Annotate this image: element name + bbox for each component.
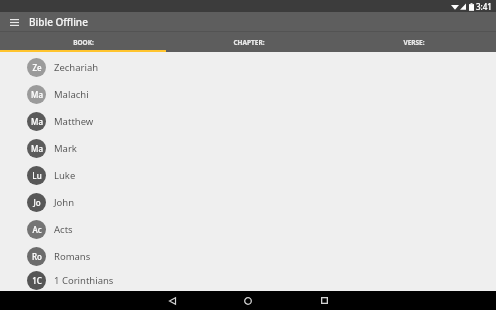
button[interactable]: Lu [0,162,496,189]
button[interactable]: Back [154,291,190,310]
button[interactable]: 1C [0,270,496,291]
staticText: CHAPTER: [233,38,265,47]
button[interactable]: VERSE: [331,32,496,52]
staticText: Luke [54,169,76,182]
button[interactable]: Jo [0,189,496,216]
staticText: Ma [31,116,43,127]
staticText: Lu [32,170,42,181]
staticText: Ze [32,62,42,73]
button[interactable]: CHAPTER: [166,32,331,52]
staticText: Ro [32,251,42,262]
button[interactable]: Home [230,291,266,310]
button[interactable]: Ma [0,108,496,135]
button[interactable]: BOOK: [0,32,166,52]
button[interactable]: Ac [0,216,496,243]
staticText: Ma [31,143,43,154]
staticText: Malachi [54,88,89,101]
staticText: 1 Corinthians [54,274,114,287]
staticText: Ma [31,89,43,100]
staticText: Romans [54,250,91,263]
staticText: BOOK: [73,38,94,47]
staticText: Jo [33,197,41,208]
staticText: VERSE: [403,38,425,47]
button[interactable]: Recent apps [306,291,342,310]
button[interactable]: Ma [0,135,496,162]
button[interactable]: Open navigation drawer [6,14,23,31]
staticText: 3:41 [476,1,492,12]
staticText: Matthew [54,115,94,128]
staticText: Ac [32,224,42,235]
button[interactable]: Ro [0,243,496,270]
staticText: Zechariah [54,61,99,74]
staticText: Acts [54,223,73,236]
staticText: John [54,196,75,209]
staticText: 1C [32,275,42,286]
button[interactable]: Ze [0,54,496,81]
button[interactable]: Ma [0,81,496,108]
staticText: Mark [54,142,77,155]
staticText: Bible Offline [29,15,88,29]
